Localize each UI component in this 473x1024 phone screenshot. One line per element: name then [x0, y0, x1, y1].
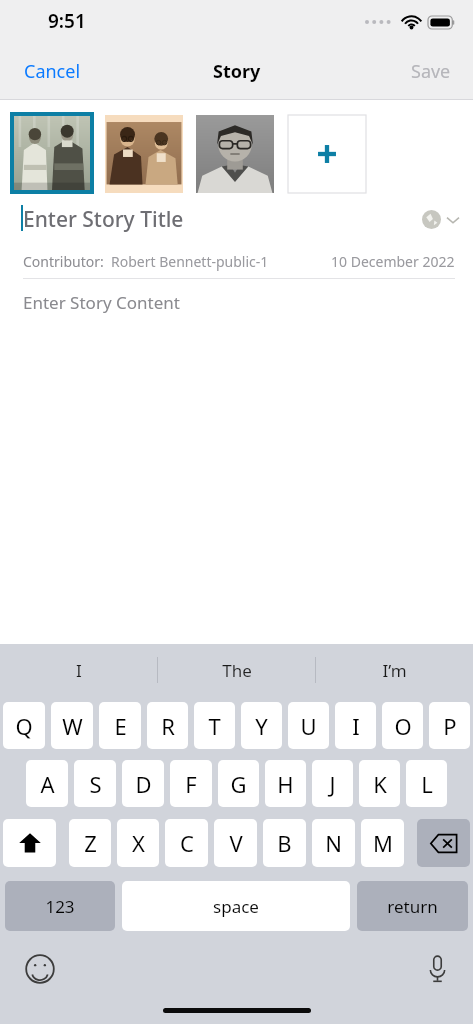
button[interactable]: A: [26, 760, 68, 807]
staticText: C: [180, 828, 194, 858]
staticText: I: [352, 711, 360, 741]
staticText: S: [89, 769, 102, 799]
button[interactable]: E: [99, 702, 141, 749]
button[interactable]: X: [117, 819, 159, 867]
button[interactable]: Save: [395, 49, 473, 94]
button[interactable]: Shift: [3, 819, 56, 867]
button[interactable]: Cancel: [0, 49, 97, 94]
staticText: I: [76, 659, 82, 682]
button[interactable]: Q: [3, 702, 45, 749]
button[interactable]: B: [263, 819, 306, 867]
button[interactable]: Y: [241, 702, 282, 749]
button[interactable]: U: [288, 702, 329, 749]
button[interactable]: J: [312, 760, 353, 807]
button[interactable]: D: [122, 760, 164, 807]
button[interactable]: H: [265, 760, 306, 807]
staticText: U: [300, 711, 317, 741]
staticText: Story: [213, 59, 261, 84]
staticText: T: [208, 711, 221, 741]
button[interactable]: W: [51, 702, 93, 749]
staticText: G: [230, 769, 247, 799]
staticText: Contributor:: [23, 252, 104, 271]
staticText: Save: [411, 59, 451, 84]
staticText: A: [40, 769, 55, 799]
staticText: W: [62, 711, 83, 741]
staticText: Robert Bennett-public-1: [111, 252, 269, 271]
button[interactable]: Photo 2: [105, 115, 183, 193]
button[interactable]: R: [147, 702, 188, 749]
staticText: R: [161, 711, 175, 741]
button[interactable]: I’m: [316, 644, 473, 696]
staticText: X: [132, 828, 145, 858]
button[interactable]: Z: [69, 819, 111, 867]
staticText: D: [135, 769, 152, 799]
button[interactable]: C: [165, 819, 208, 867]
button[interactable]: T: [194, 702, 235, 749]
button[interactable]: The: [158, 644, 315, 696]
button[interactable]: I: [335, 702, 376, 749]
staticText: P: [443, 711, 457, 741]
button[interactable]: Backspace: [417, 819, 470, 867]
button[interactable]: space: [122, 881, 350, 931]
staticText: 10 December 2022: [331, 252, 455, 271]
button[interactable]: V: [214, 819, 257, 867]
staticText: The: [222, 659, 252, 682]
staticText: H: [277, 769, 294, 799]
staticText: Enter Story Content: [23, 291, 180, 314]
button[interactable]: Dictation: [424, 950, 451, 988]
staticText: Z: [84, 828, 97, 858]
staticText: J: [329, 769, 336, 799]
button[interactable]: I: [0, 644, 157, 696]
button[interactable]: Photo 1 selected: [10, 112, 94, 194]
staticText: K: [373, 769, 387, 799]
staticText: O: [394, 711, 412, 741]
button[interactable]: Privacy: public: [411, 201, 473, 238]
button[interactable]: S: [74, 760, 116, 807]
button[interactable]: Add photo: [288, 115, 366, 193]
staticText: 9:51: [48, 8, 86, 34]
button[interactable]: Photo 3: [196, 115, 274, 193]
staticText: Q: [15, 711, 33, 741]
button[interactable]: M: [361, 819, 404, 867]
button[interactable]: K: [359, 760, 400, 807]
staticText: V: [229, 828, 243, 858]
staticText: F: [185, 769, 197, 799]
button[interactable]: O: [382, 702, 423, 749]
staticText: N: [325, 828, 342, 858]
button[interactable]: 123: [5, 881, 115, 931]
staticText: L: [421, 769, 433, 799]
staticText: space: [213, 895, 259, 918]
staticText: M: [373, 828, 393, 858]
staticText: 123: [45, 895, 75, 918]
staticText: Y: [255, 711, 268, 741]
button[interactable]: G: [218, 760, 259, 807]
staticText: Enter Story Title: [23, 205, 184, 234]
staticText: I’m: [382, 659, 407, 682]
button[interactable]: Emoji: [20, 949, 60, 989]
button[interactable]: L: [406, 760, 447, 807]
button[interactable]: return: [357, 881, 468, 931]
staticText: Cancel: [24, 59, 81, 84]
button[interactable]: N: [312, 819, 355, 867]
button[interactable]: P: [429, 702, 470, 749]
staticText: B: [277, 828, 292, 858]
staticText: E: [114, 711, 127, 741]
staticText: return: [387, 895, 438, 918]
button[interactable]: F: [170, 760, 212, 807]
